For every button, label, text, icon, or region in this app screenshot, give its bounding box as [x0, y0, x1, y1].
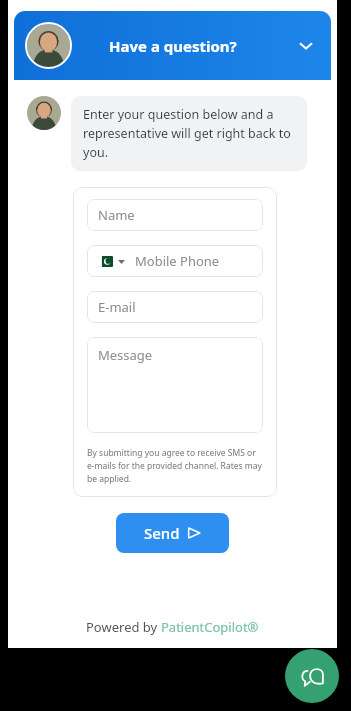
button[interactable]: Name	[87, 199, 263, 231]
button[interactable]: Send	[116, 513, 229, 553]
button[interactable]: PatientCopilot®	[161, 618, 259, 636]
button[interactable]: Have a question?	[14, 11, 331, 80]
button[interactable]: Open chat	[285, 649, 339, 703]
staticText: Mobile Phone	[135, 252, 220, 270]
button[interactable]: Message	[87, 337, 263, 433]
button[interactable]: E-mail	[87, 291, 263, 323]
staticText: Powered by	[86, 618, 161, 636]
staticText: Have a question?	[109, 36, 237, 56]
staticText: Message	[98, 346, 153, 364]
staticText: By submitting you agree to receive SMS o…	[87, 447, 263, 485]
staticText: Name	[98, 206, 135, 224]
button[interactable]: Mobile Phone	[87, 245, 263, 277]
button[interactable]: Collapse	[291, 31, 321, 61]
staticText: E-mail	[98, 298, 136, 316]
staticText: Send	[144, 523, 180, 543]
staticText: Enter your question below and a represen…	[83, 106, 295, 161]
